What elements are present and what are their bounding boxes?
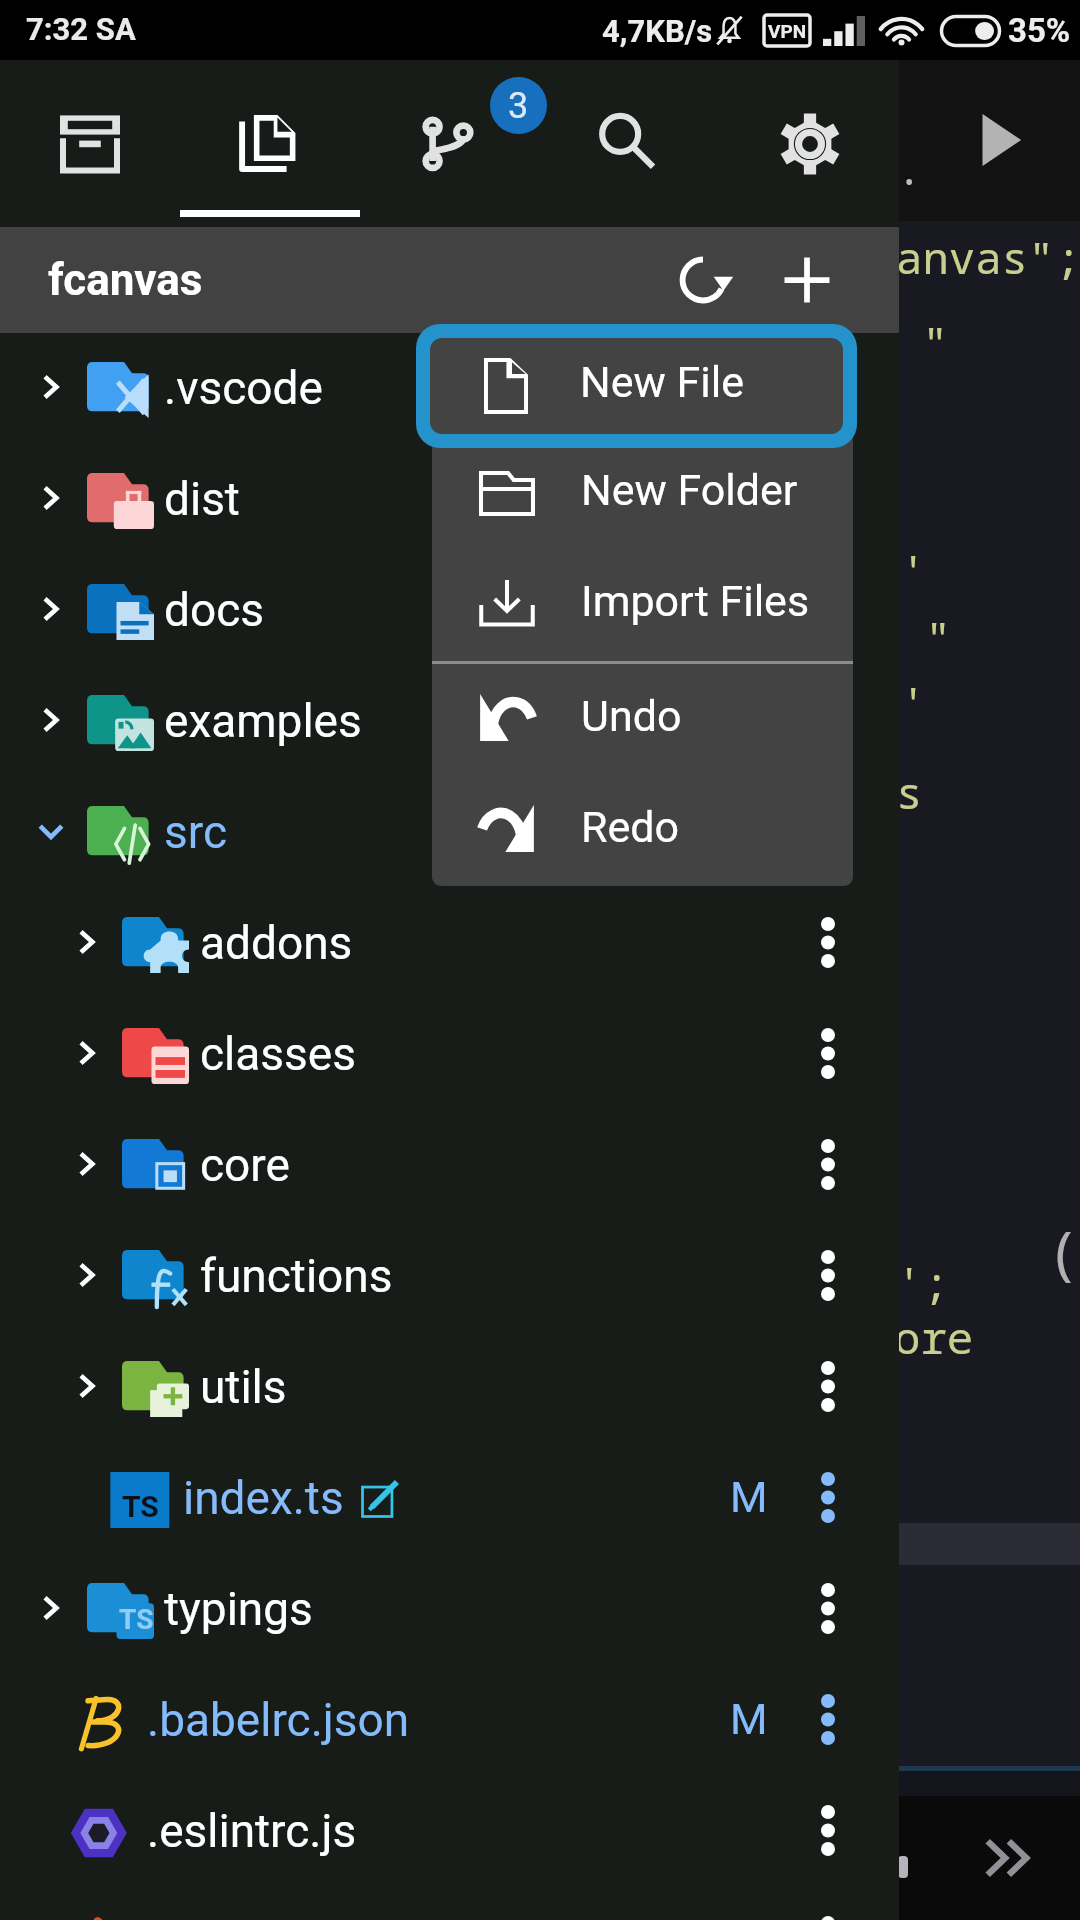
button[interactable]: Import Files — [432, 547, 853, 657]
staticText: VPN — [768, 20, 807, 42]
staticText: 3 — [508, 85, 529, 127]
staticText: ore — [894, 1307, 974, 1367]
staticText: 35% — [1008, 11, 1071, 50]
staticText: . — [896, 138, 923, 198]
staticText: 4,7KB/s — [602, 13, 713, 49]
staticText: ' — [900, 540, 927, 600]
button[interactable]: utils — [0, 1330, 899, 1441]
button[interactable]: TS — [0, 1552, 899, 1663]
button[interactable]: More options for .babelrc.json — [786, 1677, 870, 1761]
staticText: .eslintrc.js — [147, 1804, 357, 1858]
button[interactable]: Search — [573, 88, 681, 196]
button[interactable]: Undo — [432, 662, 853, 772]
button[interactable]: examples — [0, 664, 899, 775]
staticText: TS — [119, 1603, 154, 1636]
button[interactable]: More options for classes — [786, 1011, 870, 1095]
button[interactable]: .vscode — [0, 331, 899, 442]
button[interactable]: More options for addons — [786, 900, 870, 984]
button[interactable]: .babelrc.json — [0, 1663, 899, 1774]
staticText: M — [730, 1472, 768, 1522]
staticText: dist — [164, 472, 240, 526]
staticText: addons — [200, 916, 353, 970]
button[interactable]: classes — [0, 997, 899, 1108]
staticText: anvas"; — [896, 227, 1080, 287]
staticText: M — [730, 1694, 768, 1744]
button[interactable]: .eslintrc.js — [0, 1774, 899, 1885]
button[interactable]: More options for core — [786, 1122, 870, 1206]
button[interactable]: src — [0, 775, 899, 886]
staticText: " — [925, 607, 952, 667]
button[interactable]: New Folder — [432, 436, 853, 546]
button[interactable]: More options for typings — [786, 1566, 870, 1650]
staticText: New File — [580, 357, 744, 407]
button[interactable]: docs — [0, 553, 899, 664]
staticText: .babelrc.json — [147, 1693, 410, 1747]
button[interactable]: TS — [0, 1441, 899, 1552]
button[interactable]: functions — [0, 1219, 899, 1330]
staticText: core — [200, 1138, 290, 1192]
button[interactable]: Git branches — [396, 89, 504, 197]
button[interactable]: More options for index.html — [786, 1899, 870, 1920]
staticText: ' — [900, 672, 927, 732]
staticText: examples — [164, 694, 362, 748]
staticText: src — [164, 805, 227, 859]
staticText: Redo — [581, 802, 680, 852]
button[interactable]: addons — [0, 886, 899, 997]
button[interactable]: index.html — [0, 1885, 899, 1920]
button[interactable]: Files — [216, 89, 324, 197]
staticText: .vscode — [164, 361, 323, 415]
staticText: Undo — [581, 691, 682, 741]
staticText: 7:32 SA — [26, 11, 136, 47]
staticText: TS — [122, 1489, 159, 1524]
button[interactable]: dist — [0, 442, 899, 553]
button[interactable]: More options for .eslintrc.js — [786, 1788, 870, 1872]
button[interactable]: New file or folder — [759, 232, 855, 328]
button[interactable]: Redo — [432, 773, 853, 883]
staticText: classes — [200, 1027, 356, 1081]
staticText: index.ts — [183, 1471, 344, 1525]
staticText: typings — [164, 1582, 313, 1636]
staticText: s — [896, 762, 923, 822]
button[interactable]: More actions — [955, 1806, 1059, 1910]
button[interactable]: Archive — [36, 89, 144, 197]
button[interactable]: More options for index.ts — [786, 1455, 870, 1539]
button[interactable]: Run — [960, 100, 1040, 180]
button[interactable]: core — [0, 1108, 899, 1219]
staticText: functions — [200, 1249, 393, 1303]
button[interactable]: Settings — [756, 90, 864, 198]
staticText: ( — [1046, 1212, 1080, 1291]
staticText: New Folder — [581, 465, 798, 515]
button[interactable]: More options for utils — [786, 1344, 870, 1428]
button[interactable]: New File — [416, 324, 857, 448]
staticText: utils — [200, 1360, 287, 1414]
button[interactable]: More options for functions — [786, 1233, 870, 1317]
staticText: docs — [164, 583, 264, 637]
staticText: fcanvas — [48, 254, 203, 306]
staticText: " — [922, 312, 949, 372]
staticText: Import Files — [581, 576, 810, 626]
staticText: '; — [896, 1252, 949, 1312]
button[interactable]: Refresh — [655, 232, 751, 328]
